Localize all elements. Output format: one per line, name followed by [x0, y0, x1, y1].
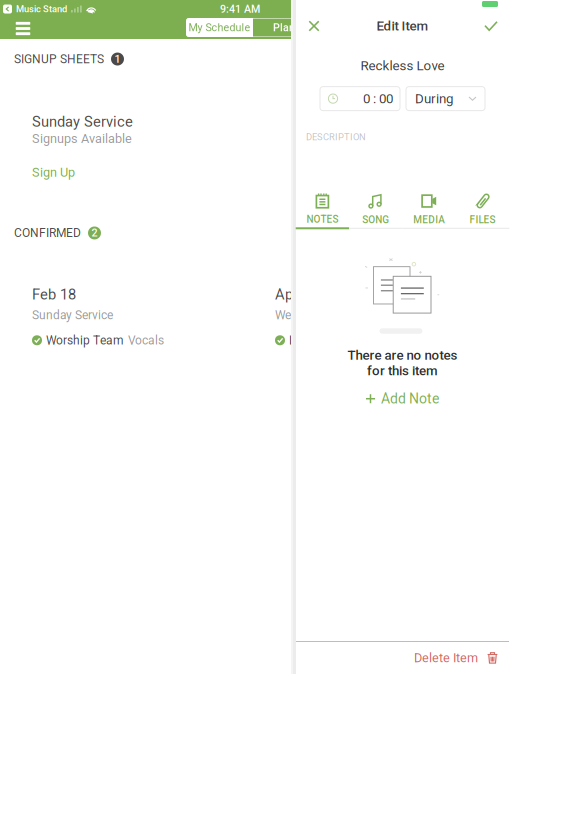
- button[interactable]: MEDIA: [402, 193, 456, 229]
- staticText: Wednesday Night: [275, 308, 369, 322]
- staticText: Apr 12: [275, 286, 318, 303]
- staticText: 1: [114, 53, 120, 65]
- staticText: Sunday Service: [32, 113, 133, 130]
- staticText: 2: [91, 227, 97, 239]
- staticText: DESCRIPTION: [306, 132, 366, 142]
- button[interactable]: Sign Up: [32, 146, 75, 180]
- staticText: for this item: [367, 363, 438, 378]
- staticText: Vocals: [128, 333, 164, 347]
- staticText: Signups Available: [32, 131, 132, 146]
- staticText: Edit Item: [376, 18, 428, 34]
- button[interactable]: SONG: [349, 193, 402, 229]
- staticText: Delete Item: [414, 651, 478, 665]
- button[interactable]: Save: [473, 10, 509, 42]
- button[interactable]: My Schedule: [186, 18, 253, 37]
- button[interactable]: Feb 18: [32, 286, 275, 347]
- staticText: SONG: [362, 214, 389, 226]
- staticText: FILES: [470, 214, 496, 226]
- staticText: Plans: [273, 21, 300, 34]
- staticText: Sign Up: [32, 165, 75, 180]
- staticText: Reckless Love: [360, 58, 444, 74]
- staticText: Music Stand: [16, 3, 67, 14]
- staticText: NOTES: [306, 214, 338, 225]
- staticText: SIGNUP SHEETS: [14, 52, 104, 66]
- staticText: 9:41 AM: [220, 3, 260, 15]
- staticText: MEDIA: [413, 214, 445, 226]
- button[interactable]: FILES: [456, 193, 509, 229]
- button[interactable]: Apr 12: [275, 286, 518, 347]
- staticText: Feb 18: [32, 286, 76, 303]
- staticText: During: [415, 91, 453, 106]
- button[interactable]: Delete Item: [414, 642, 509, 674]
- staticText: CONFIRMED: [14, 226, 81, 240]
- button[interactable]: Plans: [253, 18, 320, 37]
- staticText: Add Note: [381, 390, 439, 407]
- button[interactable]: Menu: [8, 18, 38, 39]
- staticText: 0 : 00: [363, 91, 393, 106]
- button[interactable]: Close: [296, 10, 332, 42]
- staticText: Worship Team: [46, 333, 124, 347]
- button[interactable]: Add Note: [366, 378, 439, 407]
- staticText: Sunday Service: [32, 308, 113, 322]
- staticText: Live Stream: [289, 333, 352, 347]
- button[interactable]: NOTES: [296, 193, 349, 229]
- staticText: My Schedule: [188, 21, 250, 34]
- staticText: There are no notes: [347, 347, 457, 363]
